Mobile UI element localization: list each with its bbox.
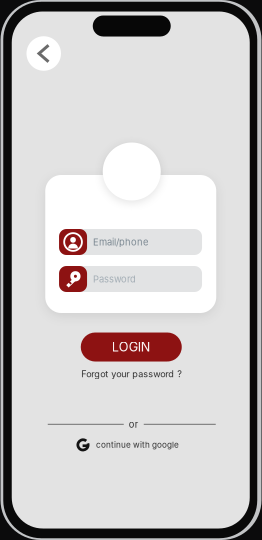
button[interactable]: Email/phone: [59, 229, 202, 255]
staticText: LOGIN: [112, 339, 151, 355]
staticText: continue with google: [96, 440, 179, 450]
button[interactable]: Back: [26, 36, 61, 71]
button[interactable]: Forgot your password ?: [81, 368, 182, 379]
staticText: Password: [93, 273, 136, 285]
button[interactable]: continue with google: [76, 438, 179, 451]
button[interactable]: Password: [59, 266, 202, 292]
staticText: or: [129, 419, 139, 430]
staticText: Forgot your password ?: [81, 368, 182, 379]
button[interactable]: LOGIN: [81, 332, 182, 361]
staticText: Email/phone: [93, 236, 148, 248]
